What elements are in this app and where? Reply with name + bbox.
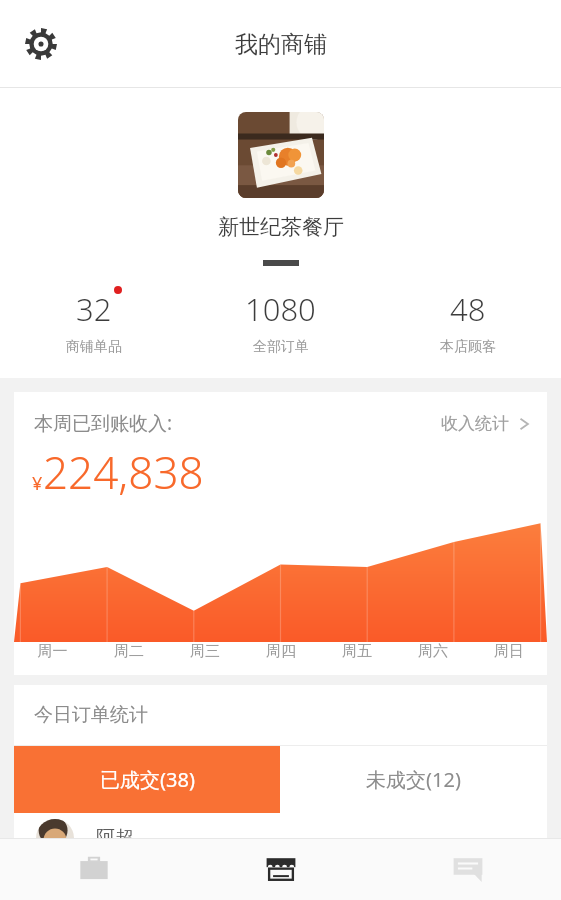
staticText: 收入统计	[441, 413, 509, 434]
button[interactable]: 阿超	[14, 813, 547, 863]
staticText: 周三	[167, 642, 243, 661]
staticText: 商铺单品	[66, 338, 122, 356]
staticText: 224,838	[43, 442, 204, 502]
staticText: 我的商铺	[235, 30, 327, 59]
staticText: 48	[450, 288, 486, 330]
staticText: 本周已到账收入:	[34, 410, 173, 436]
staticText: 周二	[91, 642, 167, 661]
button[interactable]: Settings	[14, 17, 68, 71]
staticText: 周日	[471, 642, 547, 661]
button[interactable]: 1080	[187, 288, 374, 356]
staticText: 周六	[395, 642, 471, 661]
staticText: 新世纪茶餐厅	[218, 214, 344, 240]
staticText: 阿超	[96, 826, 134, 850]
staticText: 1080	[245, 288, 316, 330]
button[interactable]: 未成交(12)	[280, 746, 547, 813]
staticText: 今日订单统计	[34, 703, 148, 727]
button[interactable]: Shop	[187, 838, 374, 900]
staticText: 周五	[319, 642, 395, 661]
staticText: 周四	[243, 642, 319, 661]
staticText: 已成交(38)	[100, 766, 195, 793]
button[interactable]: 已成交(38)	[14, 746, 280, 813]
staticText: 全部订单	[253, 338, 309, 356]
button[interactable]: 收入统计	[441, 413, 531, 434]
button[interactable]: Messages	[374, 838, 561, 900]
button[interactable]: 32	[0, 288, 187, 356]
staticText: ¥	[32, 471, 43, 496]
button[interactable]	[238, 112, 324, 198]
button[interactable]: Work	[0, 838, 187, 900]
button[interactable]: 48	[374, 288, 561, 356]
staticText: 未成交(12)	[366, 766, 461, 793]
staticText: 本店顾客	[440, 338, 496, 356]
staticText: 周一	[14, 642, 91, 661]
staticText: 32	[76, 288, 112, 330]
